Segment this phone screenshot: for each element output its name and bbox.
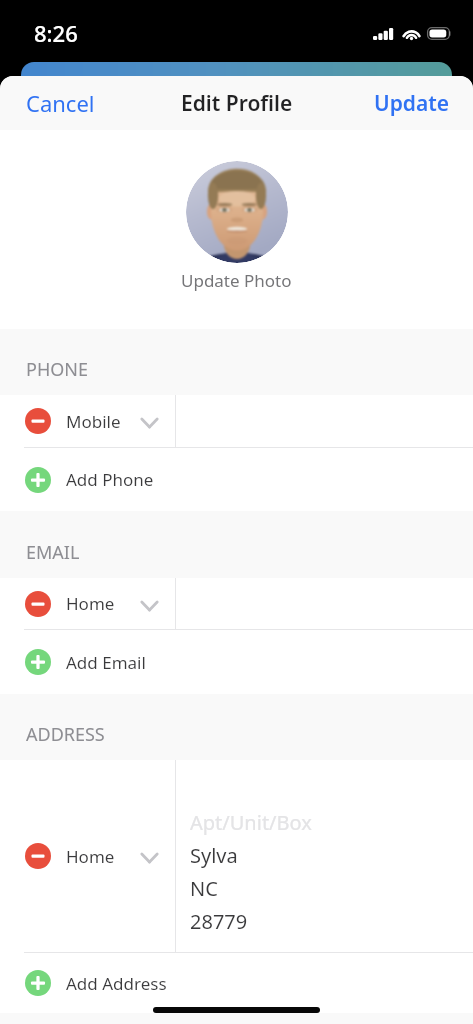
button[interactable]: Mobile [0,395,473,447]
staticText: Sylva [190,842,238,875]
staticText: Cancel [26,88,95,118]
button[interactable]: Add Email [0,630,473,694]
staticText: Add Address [66,972,167,995]
staticText: Add Email [66,651,146,674]
staticText: ADDRESS [26,722,105,747]
button[interactable]: Add Phone [0,448,473,511]
staticText: Mobile [66,410,121,433]
staticText: Add Phone [66,468,154,491]
button[interactable]: Update [351,77,473,130]
button[interactable]: Home [0,578,473,629]
staticText: Home [66,845,115,868]
staticText: Update [374,89,450,118]
staticText: Edit Profile [181,89,293,118]
staticText: Home [66,592,115,615]
staticText: Apt/Unit/Box [190,809,312,842]
staticText: EMAIL [26,540,80,565]
button[interactable]: Home [0,760,473,952]
staticText: 28779 [190,908,248,941]
staticText: PHONE [26,357,88,382]
button[interactable]: Cancel [0,76,121,130]
button[interactable]: Update Photo [186,161,288,263]
staticText: 8:26 [34,18,78,48]
button[interactable]: Add Address [0,953,473,1013]
staticText: NC [190,875,218,908]
staticText: Update Photo [181,269,292,292]
